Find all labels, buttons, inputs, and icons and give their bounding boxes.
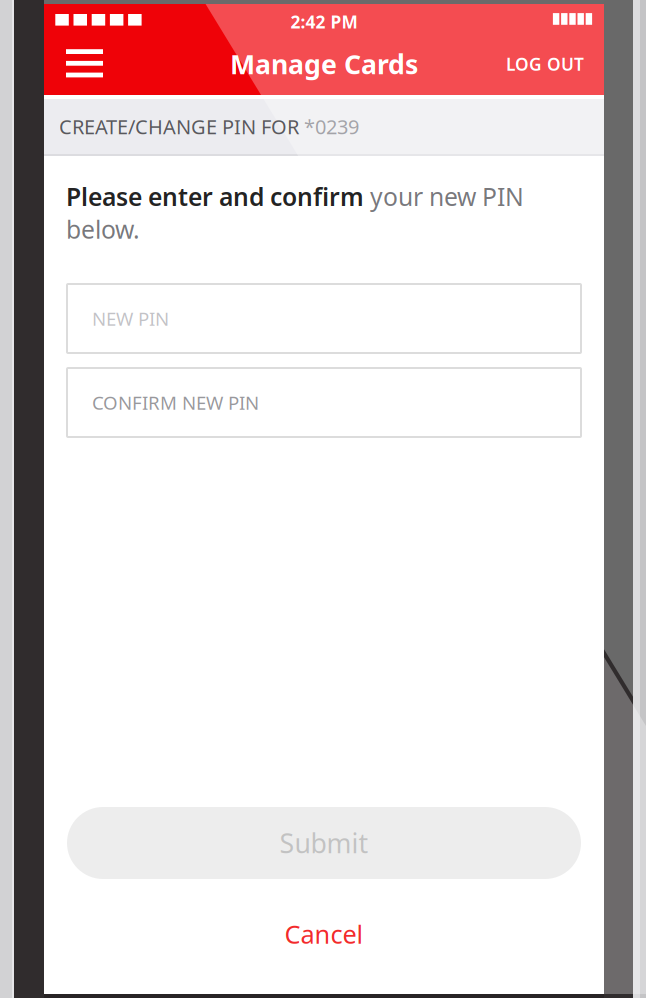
button[interactable]: CONFIRM NEW PIN	[67, 368, 581, 437]
button[interactable]: Submit	[67, 807, 581, 879]
button[interactable]: Menu	[44, 34, 154, 96]
button[interactable]: NEW PIN	[67, 284, 581, 353]
staticText: Please enter and confirm your new PIN be…	[66, 180, 524, 245]
staticText: LOG OUT	[506, 52, 584, 76]
staticText: Submit	[279, 825, 368, 861]
button[interactable]: LOG OUT	[484, 34, 604, 94]
staticText: NEW PIN	[92, 306, 169, 331]
staticText: 2:42 PM	[290, 10, 357, 30]
staticText: CREATE/CHANGE PIN FOR *0239	[59, 113, 359, 140]
staticText: CONFIRM NEW PIN	[92, 390, 259, 415]
staticText: Manage Cards	[230, 46, 418, 82]
button[interactable]: Cancel	[214, 907, 434, 961]
staticText: Cancel	[284, 917, 363, 951]
